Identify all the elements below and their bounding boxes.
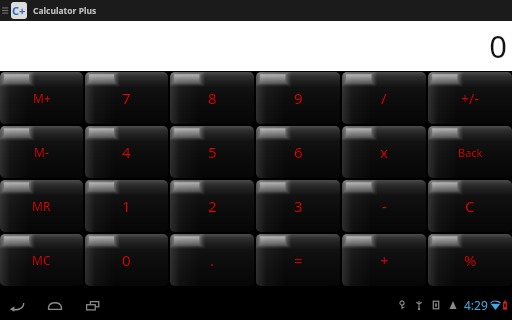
button[interactable]: 3: [256, 180, 340, 232]
button[interactable]: 4: [85, 126, 168, 178]
staticText: 8: [208, 88, 217, 108]
staticText: +/-: [461, 89, 479, 108]
button[interactable]: 6: [256, 126, 340, 178]
button[interactable]: /: [342, 72, 426, 124]
staticText: %: [464, 250, 477, 270]
staticText: C+: [12, 3, 26, 18]
staticText: 0: [489, 25, 507, 67]
button[interactable]: -: [342, 180, 426, 232]
button[interactable]: =: [256, 234, 340, 286]
button[interactable]: Back: [428, 126, 512, 178]
staticText: x: [380, 142, 388, 162]
staticText: Calculator Plus: [33, 5, 97, 17]
staticText: 6: [294, 142, 303, 162]
button[interactable]: Home: [44, 295, 66, 315]
button[interactable]: 8: [170, 72, 254, 124]
button[interactable]: %: [428, 234, 512, 286]
button[interactable]: C: [428, 180, 512, 232]
button[interactable]: .: [170, 234, 254, 286]
button[interactable]: 1: [85, 180, 168, 232]
button[interactable]: 9: [256, 72, 340, 124]
button[interactable]: Back: [6, 295, 28, 315]
staticText: 4:29: [464, 297, 488, 313]
staticText: +: [380, 250, 389, 270]
button[interactable]: x: [342, 126, 426, 178]
staticText: /: [381, 88, 387, 108]
staticText: MR: [32, 198, 51, 214]
staticText: 9: [294, 88, 303, 108]
staticText: .: [210, 250, 215, 270]
staticText: -: [382, 196, 387, 216]
staticText: 0: [122, 250, 131, 270]
button[interactable]: Menu: [1, 0, 10, 21]
button[interactable]: +: [342, 234, 426, 286]
staticText: 3: [294, 196, 303, 216]
button[interactable]: 7: [85, 72, 168, 124]
staticText: 1: [122, 196, 131, 216]
staticText: C: [465, 196, 475, 216]
staticText: 4: [122, 142, 131, 162]
staticText: 2: [208, 196, 217, 216]
button[interactable]: Display: [0, 21, 512, 71]
staticText: M-: [34, 144, 49, 160]
button[interactable]: 5: [170, 126, 254, 178]
staticText: =: [294, 250, 303, 270]
button[interactable]: M-: [0, 126, 83, 178]
button[interactable]: MC: [0, 234, 83, 286]
staticText: 5: [208, 142, 217, 162]
button[interactable]: Recent apps: [82, 295, 104, 315]
staticText: Back: [458, 145, 483, 160]
staticText: MC: [32, 252, 51, 268]
button[interactable]: 2: [170, 180, 254, 232]
staticText: M+: [33, 90, 51, 106]
button[interactable]: +/-: [428, 72, 512, 124]
button[interactable]: MR: [0, 180, 83, 232]
button[interactable]: M+: [0, 72, 83, 124]
button[interactable]: 0: [85, 234, 168, 286]
staticText: 7: [122, 88, 131, 108]
